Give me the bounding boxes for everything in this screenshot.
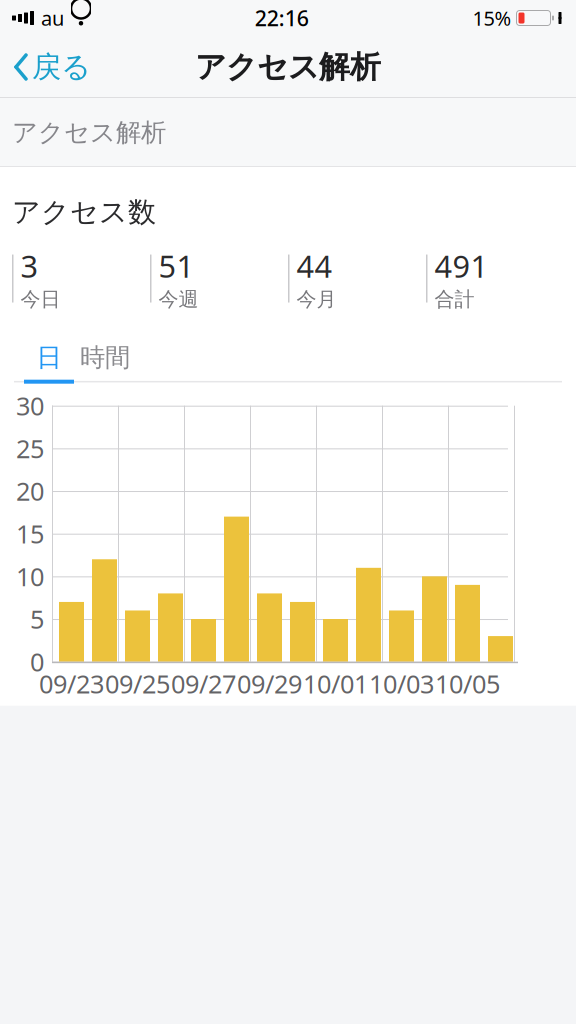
staticText: 15 <box>16 517 44 550</box>
button[interactable]: 日 <box>24 336 74 380</box>
staticText: 09/29 <box>237 667 302 700</box>
staticText: 今月 <box>296 287 336 312</box>
staticText: アクセス数 <box>12 195 156 229</box>
staticText: 51 <box>158 245 194 286</box>
staticText: 09/23 <box>39 667 104 700</box>
staticText: 3 <box>20 245 38 286</box>
staticText: 09/27 <box>171 667 236 700</box>
staticText: 10 <box>16 559 44 593</box>
staticText: 今日 <box>20 287 60 312</box>
button[interactable]: 時間 <box>74 336 136 380</box>
staticText: 戻る <box>32 49 91 85</box>
staticText: 30 <box>16 389 44 422</box>
staticText: 15% <box>472 5 511 31</box>
staticText: 5 <box>30 602 44 636</box>
staticText: 日 <box>36 342 61 373</box>
staticText: 25 <box>16 431 44 465</box>
staticText: 今週 <box>158 287 198 312</box>
staticText: アクセス解析 <box>12 117 166 148</box>
staticText: 10/05 <box>435 667 500 700</box>
staticText: 491 <box>434 245 488 286</box>
staticText: 10/01 <box>303 667 368 700</box>
staticText: 20 <box>16 474 44 508</box>
staticText: 0 <box>30 645 44 678</box>
staticText: 10/03 <box>369 667 434 700</box>
staticText: 44 <box>296 245 332 286</box>
button[interactable]: 戻る <box>0 37 103 97</box>
staticText: 09/25 <box>105 667 170 700</box>
staticText: アクセス解析 <box>195 48 381 86</box>
staticText: 合計 <box>434 287 474 312</box>
staticText: 22:16 <box>255 4 309 32</box>
staticText: au <box>41 5 64 31</box>
staticText: 時間 <box>80 342 130 373</box>
